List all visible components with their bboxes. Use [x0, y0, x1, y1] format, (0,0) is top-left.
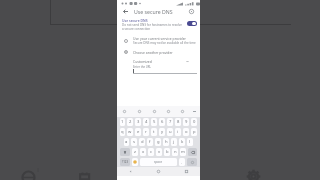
staticText: Use secure DNS [122, 18, 148, 23]
button[interactable]: 2 [127, 118, 133, 126]
staticText: 1 [121, 119, 124, 125]
button[interactable]: 9 [183, 118, 189, 126]
button[interactable]: t [151, 128, 157, 136]
staticText: Use secure DNS [134, 8, 173, 15]
button[interactable]: Space [140, 158, 177, 166]
button[interactable]: Customized [133, 59, 152, 69]
staticText: 7 [169, 119, 172, 125]
staticText: c [150, 149, 153, 155]
staticText: v [158, 149, 161, 155]
staticText: k [181, 139, 184, 145]
button[interactable]: e [135, 128, 141, 136]
button[interactable]: Keyboard tool [175, 106, 189, 117]
staticText: 3 [137, 119, 140, 125]
button[interactable]: p [191, 128, 197, 136]
staticText: space [154, 160, 163, 164]
staticText: ?123 [122, 160, 129, 164]
button[interactable]: More options [189, 106, 200, 117]
button[interactable]: Symbols [120, 158, 130, 166]
button[interactable]: 1 [120, 118, 125, 126]
staticText: Customized [133, 59, 152, 64]
staticText: y [161, 129, 164, 135]
button[interactable]: Use your current service provider [117, 35, 200, 46]
button[interactable]: Keyboard tool [161, 106, 175, 117]
staticText: 9 [185, 119, 188, 125]
button[interactable]: Emoji [132, 158, 138, 166]
button[interactable]: 6 [159, 118, 165, 126]
staticText: p [193, 129, 196, 135]
staticText: u [169, 129, 172, 135]
staticText: Enter the URL [133, 65, 152, 69]
button[interactable]: n [172, 148, 178, 156]
staticText: Secure DNS may not be available all the … [133, 41, 196, 45]
button[interactable]: Back [120, 6, 131, 17]
button[interactable]: w [127, 128, 133, 136]
staticText: Use your current service provider [133, 36, 186, 41]
button[interactable]: i [175, 128, 181, 136]
button[interactable]: d [139, 138, 145, 146]
button[interactable]: . [179, 158, 185, 166]
button[interactable]: v [156, 148, 162, 156]
button[interactable]: g [155, 138, 161, 146]
staticText: 8 [177, 119, 180, 125]
button[interactable]: c [148, 148, 154, 156]
staticText: s [133, 139, 136, 145]
staticText: n [174, 149, 177, 155]
button[interactable]: Shift [120, 148, 130, 156]
button[interactable]: Home [144, 167, 172, 176]
staticText: t [153, 129, 155, 135]
button[interactable]: Back [117, 167, 144, 176]
staticText: f [149, 139, 151, 145]
button[interactable]: r [143, 128, 149, 136]
button[interactable]: x [140, 148, 146, 156]
button[interactable]: 7 [167, 118, 173, 126]
button[interactable]: Keyboard tool [117, 106, 132, 117]
button[interactable]: h [163, 138, 169, 146]
staticText: l [189, 139, 191, 145]
staticText: 2 [129, 119, 132, 125]
staticText: q [121, 129, 124, 135]
button[interactable]: l [187, 138, 193, 146]
staticText: w [128, 129, 132, 135]
staticText: 4 [145, 119, 148, 125]
button[interactable]: u [167, 128, 173, 136]
staticText: m [181, 149, 185, 155]
staticText: 6 [161, 119, 164, 125]
staticText: g [157, 139, 160, 145]
button[interactable]: Keyboard tool [132, 106, 147, 117]
button[interactable]: 5 [151, 118, 157, 126]
button[interactable]: b [164, 148, 170, 156]
button[interactable]: 3 [135, 118, 141, 126]
button[interactable]: q [120, 128, 125, 136]
button[interactable]: Go [187, 158, 197, 166]
button[interactable]: Recent apps [172, 167, 200, 176]
button[interactable]: s [131, 138, 137, 146]
button[interactable]: m [180, 148, 186, 156]
staticText: i [177, 129, 179, 135]
staticText: a [125, 139, 128, 145]
button[interactable]: Choose another provider [117, 47, 200, 57]
button[interactable]: Help [186, 6, 197, 17]
button[interactable]: o [183, 128, 189, 136]
button[interactable]: k [179, 138, 185, 146]
button[interactable]: Use secure DNS [117, 17, 200, 30]
staticText: h [165, 139, 168, 145]
button[interactable]: Keyboard tool [147, 106, 161, 117]
button[interactable]: j [171, 138, 177, 146]
staticText: x [142, 149, 145, 155]
button[interactable]: 4 [143, 118, 149, 126]
button[interactable]: f [147, 138, 153, 146]
staticText: o [185, 129, 188, 135]
staticText: j [173, 139, 175, 145]
staticText: d [141, 139, 144, 145]
button[interactable]: a [124, 138, 129, 146]
button[interactable]: Backspace [188, 148, 197, 156]
button[interactable]: 8 [175, 118, 181, 126]
button[interactable]: z [132, 148, 138, 156]
button[interactable]: y [159, 128, 165, 136]
staticText: Do not send DNS for hostnames to resolve… [122, 23, 183, 31]
button[interactable]: 0 [191, 118, 197, 126]
staticText: e [137, 129, 140, 135]
staticText: 5 [153, 119, 156, 125]
staticText: 0 [193, 119, 196, 125]
